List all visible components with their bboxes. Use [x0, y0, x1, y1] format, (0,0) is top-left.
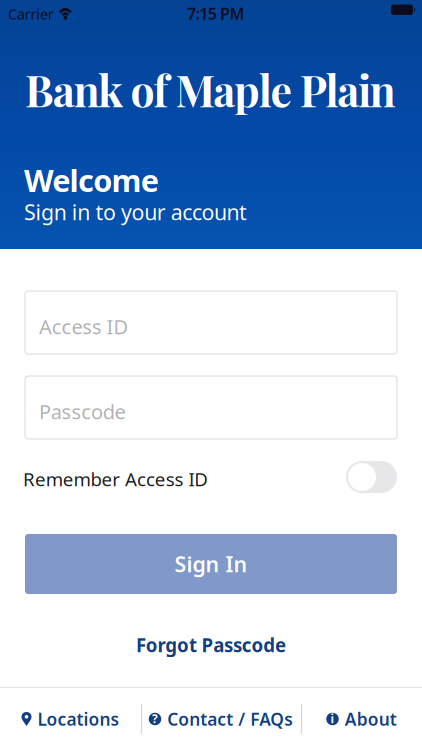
- staticText: Welcome: [24, 160, 159, 200]
- staticText: ?: [152, 710, 158, 726]
- staticText: Locations: [37, 707, 119, 730]
- button[interactable]: i: [301, 687, 422, 750]
- staticText: Passcode: [39, 398, 126, 425]
- staticText: Forgot Passcode: [136, 633, 286, 657]
- staticText: Sign In: [174, 550, 247, 578]
- staticText: Bank of Maple Plain: [25, 61, 396, 118]
- staticText: Access ID: [39, 313, 128, 340]
- button[interactable]: Locations: [0, 687, 141, 750]
- staticText: i: [330, 710, 334, 726]
- staticText: 7:15 PM: [187, 3, 245, 24]
- staticText: About: [345, 707, 397, 730]
- button[interactable]: Sign In: [25, 534, 397, 594]
- button[interactable]: ?: [141, 687, 301, 750]
- staticText: Sign in to your account: [24, 198, 247, 226]
- staticText: Contact / FAQs: [167, 707, 293, 730]
- staticText: Carrier: [8, 4, 54, 23]
- staticText: Remember Access ID: [23, 467, 208, 491]
- button[interactable]: Forgot Passcode: [0, 634, 422, 656]
- button[interactable]: Remember Access ID: [0, 461, 422, 493]
